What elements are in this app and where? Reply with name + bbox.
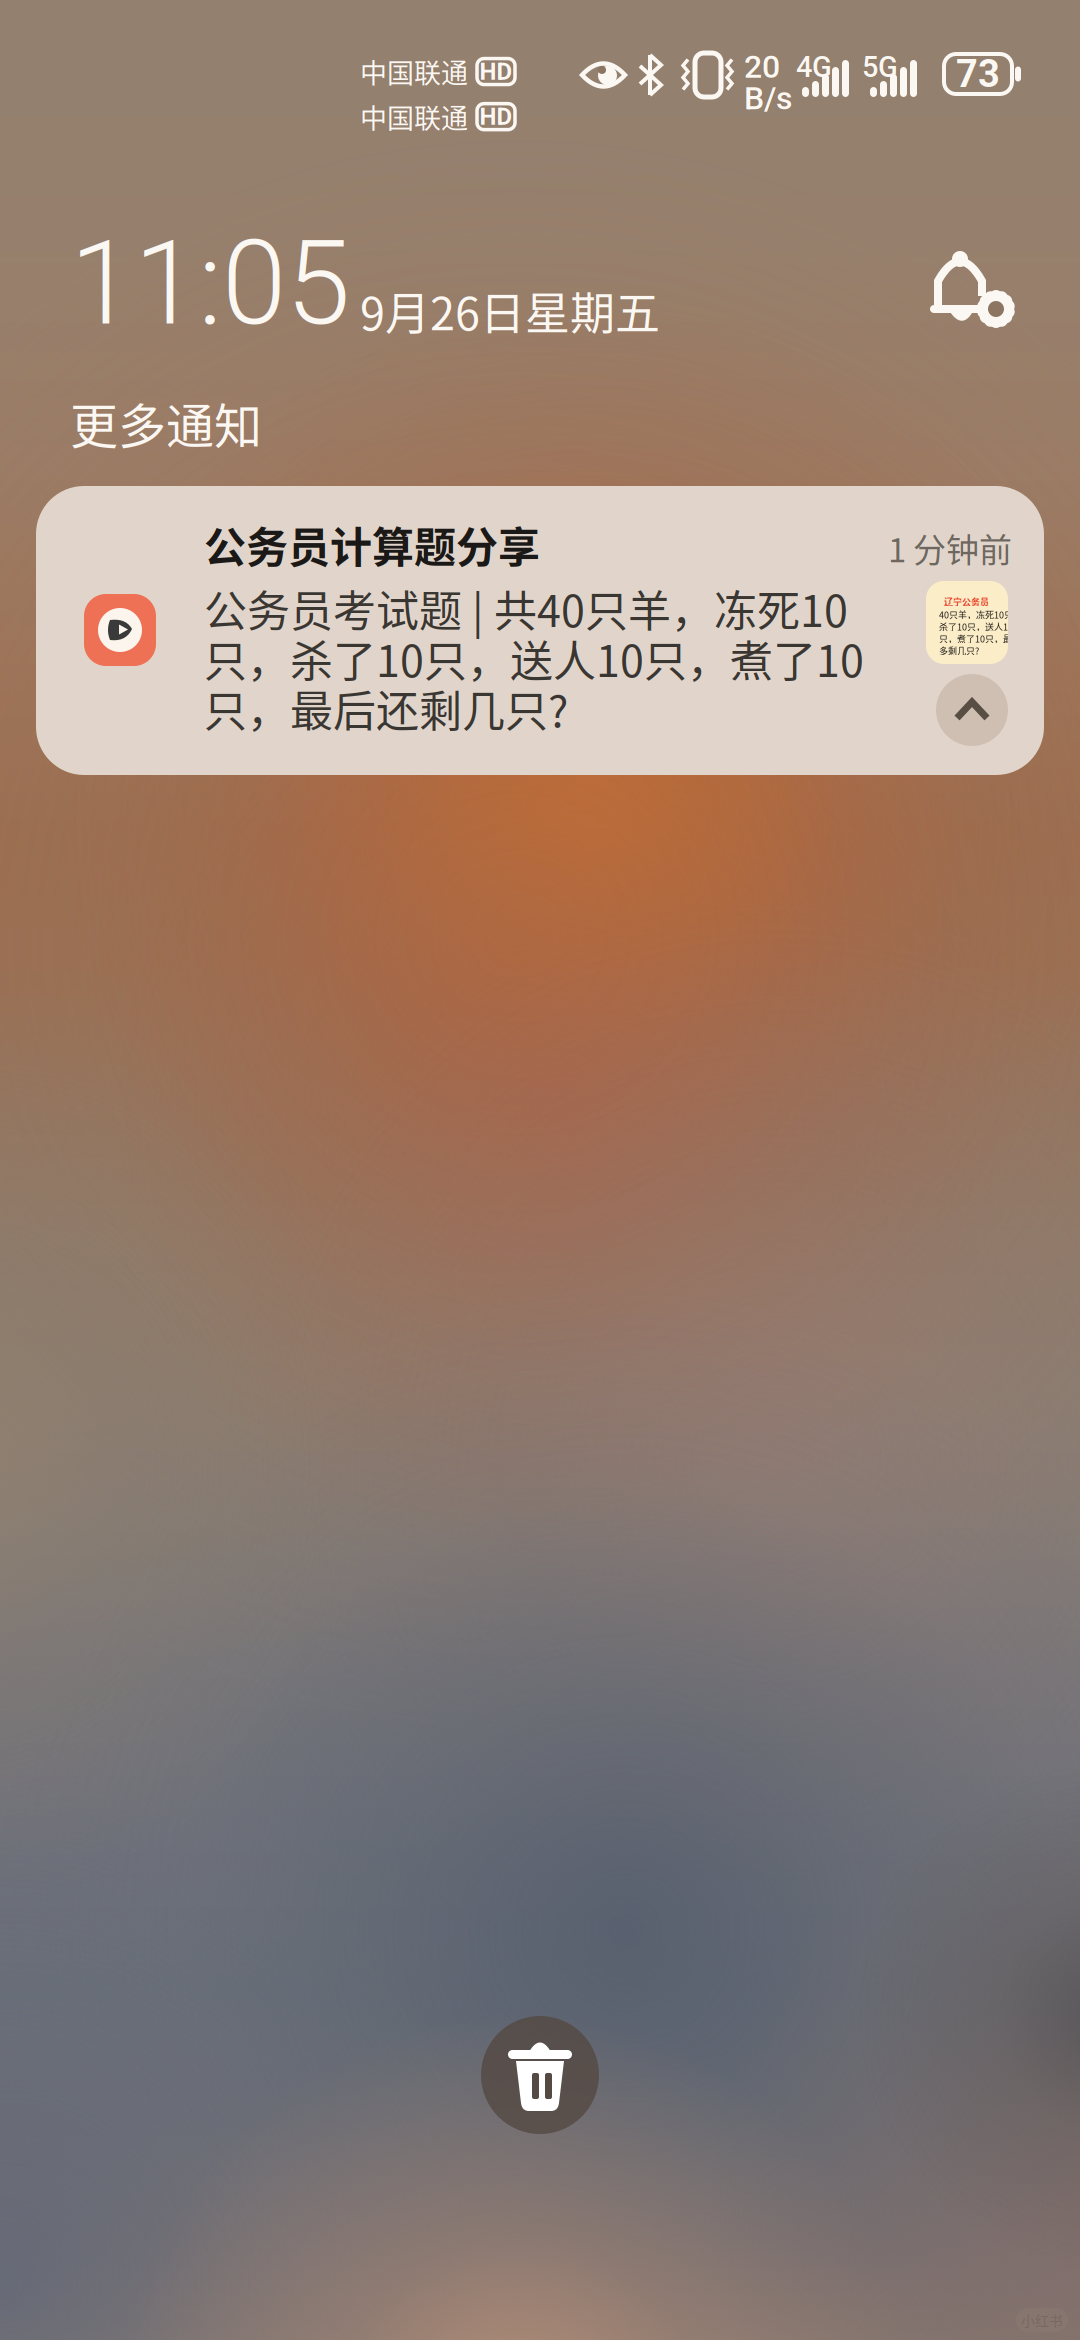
button[interactable]: Notification settings — [934, 250, 1018, 332]
staticText: 中国联通 — [360, 52, 468, 91]
staticText: 更多通知 — [70, 388, 262, 457]
staticText: 9月26日星期五 — [360, 278, 660, 343]
staticText: 20 — [744, 48, 780, 85]
staticText: 多剩几只? — [939, 644, 979, 657]
staticText: HD — [479, 103, 512, 131]
staticText: 小红书 — [1021, 2310, 1063, 2330]
staticText: 40只羊，冻死10只 — [939, 608, 1013, 621]
staticText: 只，杀了10只，送人10只，煮了10 — [204, 627, 864, 689]
staticText: 4G — [796, 50, 832, 84]
staticText: 中国联通 — [360, 97, 468, 136]
staticText: 公务员计算题分享 — [204, 514, 540, 575]
staticText: 杀了10只，送人10 — [939, 620, 1013, 633]
staticText: 73 — [956, 52, 1000, 96]
staticText: 公务员考试题 | 共40只羊，冻死10 — [204, 577, 848, 639]
staticText: 5G — [862, 50, 898, 84]
staticText: 只，最后还剩几只? — [204, 677, 568, 739]
button[interactable]: Collapse notification — [936, 674, 1008, 746]
staticText: B/s — [744, 79, 792, 117]
staticText: 1 分钟前 — [888, 524, 1012, 572]
button[interactable]: Clear all notifications — [481, 2016, 599, 2134]
button[interactable]: 公务员计算题分享 — [36, 486, 1044, 775]
staticText: 只，煮了10只，最 — [939, 632, 1012, 645]
staticText: 辽宁公务员 — [944, 595, 989, 608]
staticText: HD — [479, 57, 512, 86]
staticText: 11:05 — [70, 216, 350, 352]
